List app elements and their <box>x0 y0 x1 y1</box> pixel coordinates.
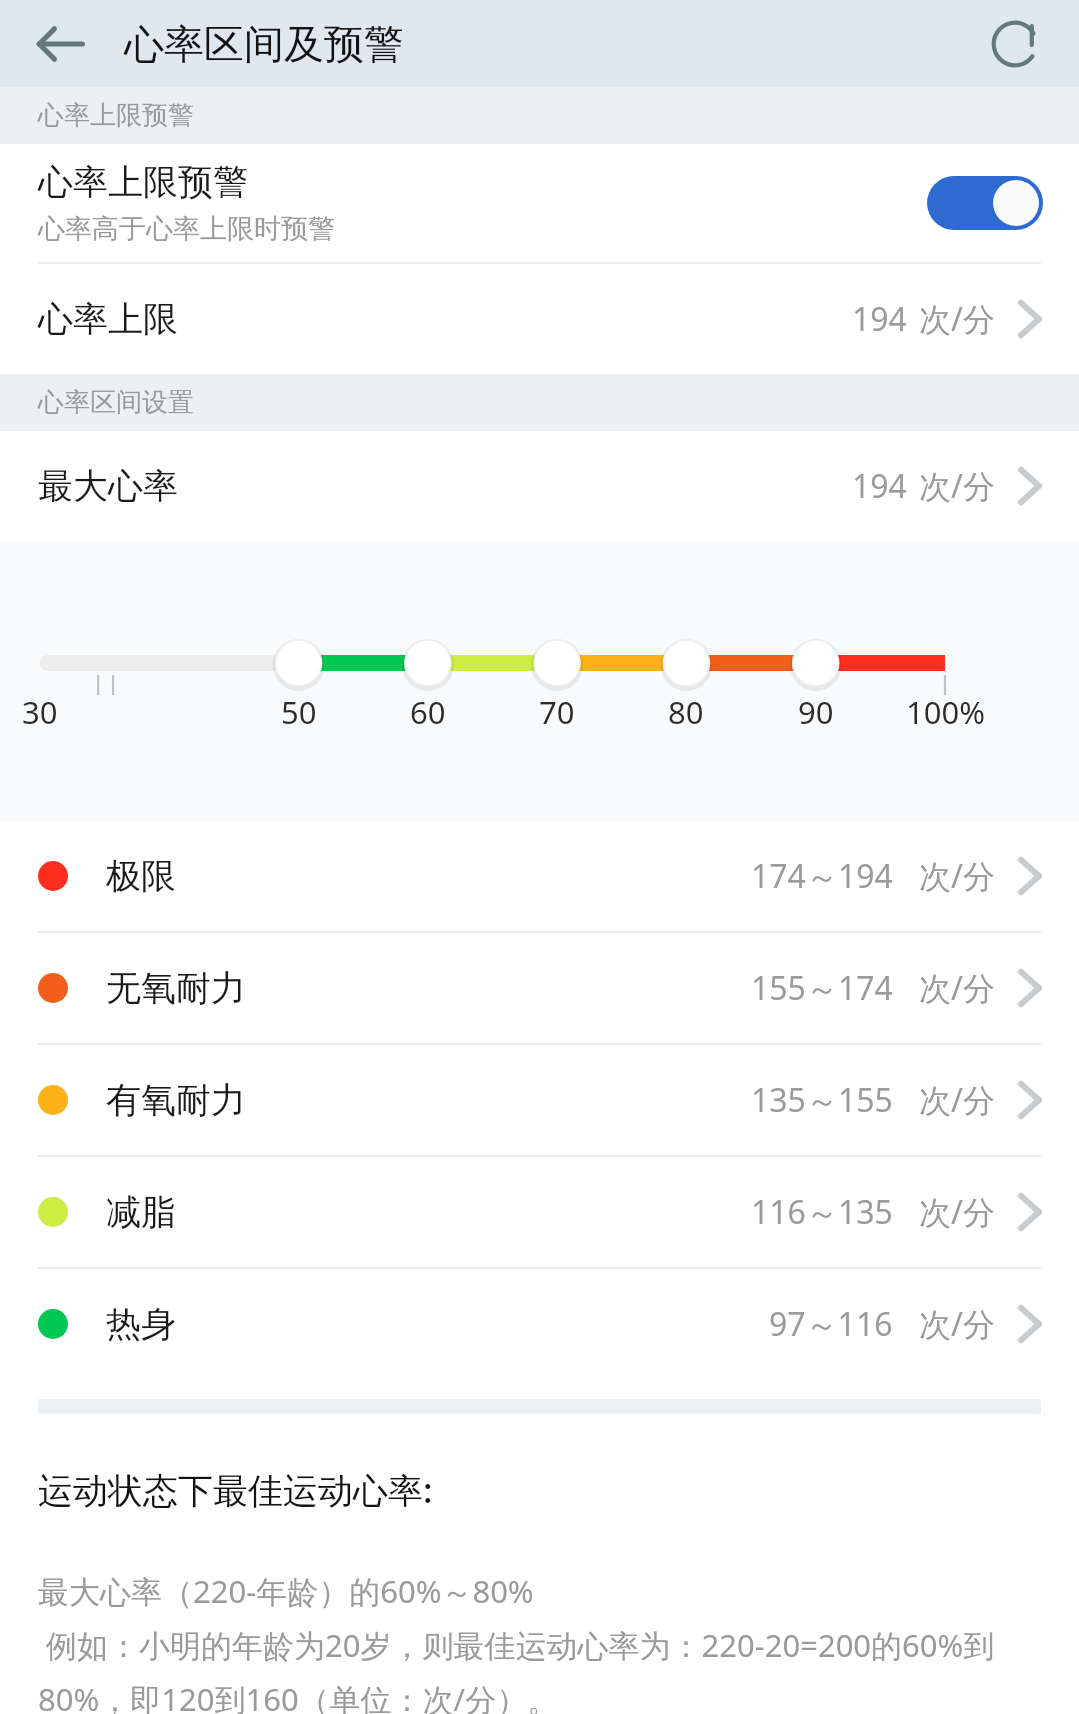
staticText: 次/分 <box>919 1078 995 1122</box>
staticText: 100% <box>906 691 985 733</box>
staticText: 运动状态下最佳运动心率: <box>38 1466 433 1514</box>
staticText: 194 <box>852 464 907 508</box>
staticText: 心率上限 <box>38 297 852 341</box>
staticText: 心率高于心率上限时预警 <box>38 212 335 246</box>
staticText: 135～155 <box>751 1078 893 1122</box>
staticText: 97～116 <box>769 1302 893 1346</box>
button[interactable]: 减脂 <box>0 1157 1079 1267</box>
staticText: 心率区间及预警 <box>124 19 404 69</box>
staticText: 90 <box>798 691 834 733</box>
staticText: 50 <box>281 691 317 733</box>
staticText: 心率上限预警 <box>38 99 194 132</box>
staticText: 155～174 <box>751 966 893 1010</box>
staticText: 热身 <box>106 1302 769 1346</box>
button[interactable]: 有氧耐力 <box>0 1045 1079 1155</box>
staticText: 194 <box>852 297 907 341</box>
button[interactable]: 心率上限预警开关 <box>927 176 1043 230</box>
staticText: 减脂 <box>106 1190 751 1234</box>
staticText: 极限 <box>106 854 751 898</box>
button[interactable]: 无氧耐力 <box>0 933 1079 1043</box>
button[interactable]: Back <box>32 16 88 72</box>
staticText: 有氧耐力 <box>106 1078 751 1122</box>
staticText: 116～135 <box>751 1190 893 1234</box>
button[interactable]: Refresh <box>987 16 1043 72</box>
staticText: 心率上限预警 <box>38 160 248 204</box>
staticText: 最大心率（220-年龄）的60%～80% 例如：小明的年龄为20岁，则最佳运动心… <box>38 1570 1049 1714</box>
staticText: 次/分 <box>919 854 995 898</box>
staticText: 80 <box>668 691 704 733</box>
staticText: 30 <box>22 691 58 733</box>
button[interactable]: 心率上限 <box>0 264 1079 374</box>
button[interactable]: 最大心率 <box>0 431 1079 541</box>
staticText: 次/分 <box>919 297 995 341</box>
staticText: 次/分 <box>919 464 995 508</box>
staticText: 次/分 <box>919 1190 995 1234</box>
button[interactable]: 热身 <box>0 1269 1079 1379</box>
button[interactable]: 心率上限预警 <box>0 144 1079 262</box>
staticText: 次/分 <box>919 966 995 1010</box>
staticText: 次/分 <box>919 1302 995 1346</box>
button[interactable]: 极限 <box>0 821 1079 931</box>
staticText: 无氧耐力 <box>106 966 751 1010</box>
staticText: 心率区间设置 <box>38 386 194 419</box>
staticText: 60 <box>410 691 446 733</box>
staticText: 174～194 <box>751 854 893 898</box>
staticText: 70 <box>539 691 575 733</box>
staticText: 最大心率 <box>38 464 852 508</box>
